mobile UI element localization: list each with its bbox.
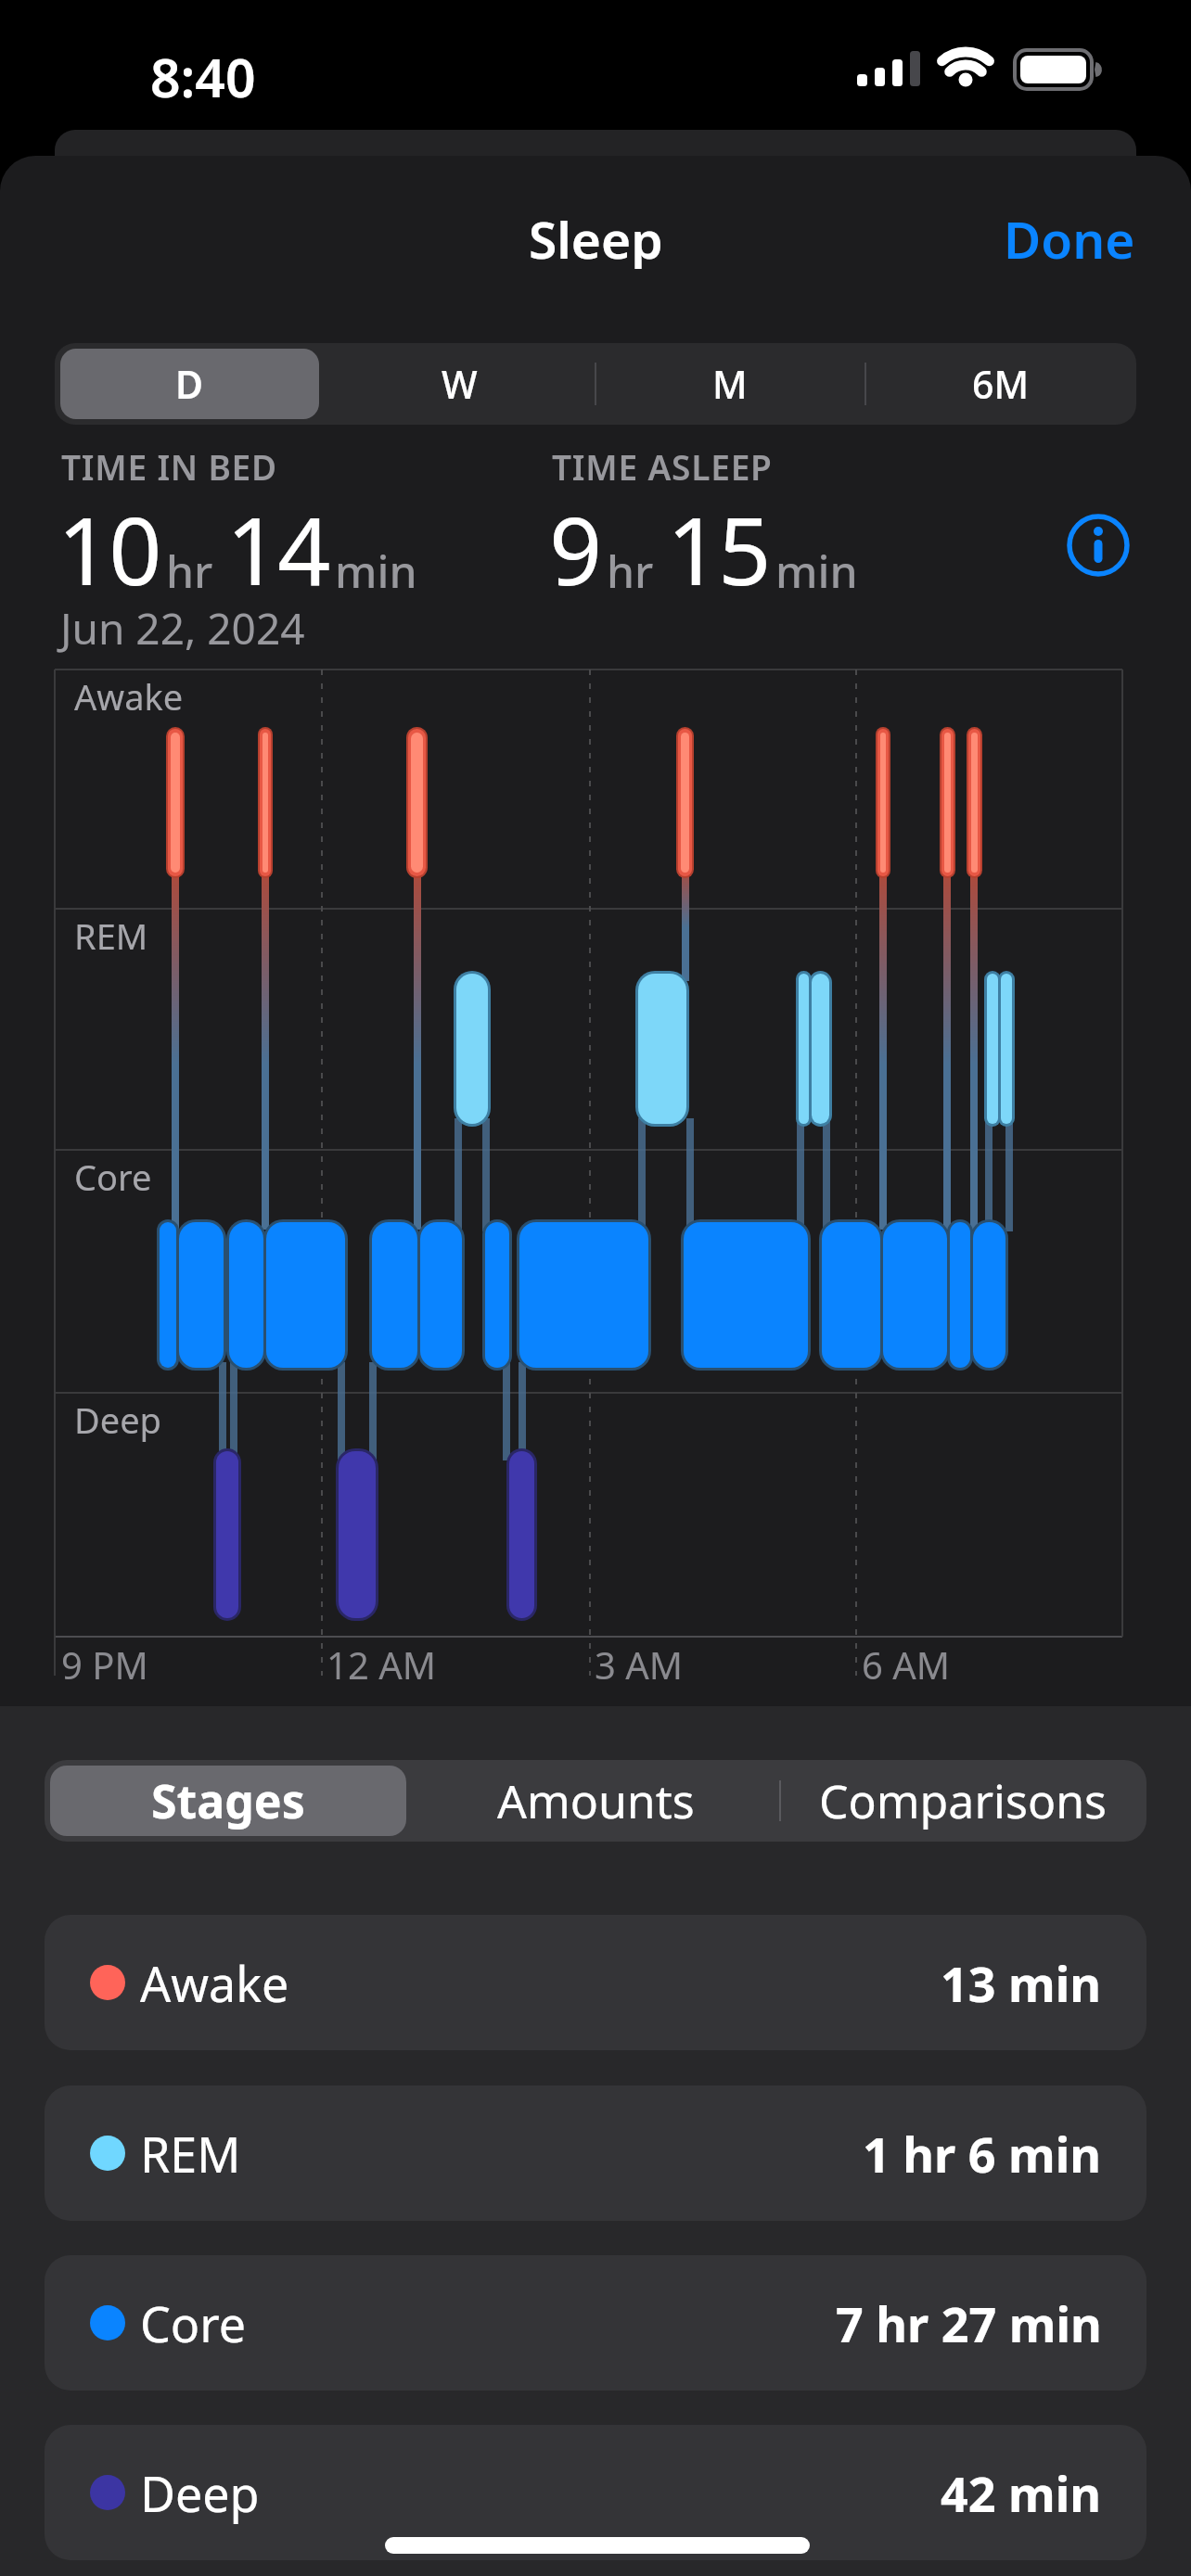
button[interactable]: Core bbox=[45, 2255, 1146, 2391]
button[interactable]: M bbox=[595, 343, 865, 425]
staticText: 7 hr 27 min bbox=[836, 2290, 1102, 2356]
staticText: Comparisons bbox=[819, 1769, 1107, 1832]
staticText: Done bbox=[1004, 204, 1135, 269]
staticText: Sleep bbox=[529, 204, 663, 269]
staticText: M bbox=[712, 358, 748, 410]
button[interactable]: Awake bbox=[45, 1915, 1146, 2050]
button[interactable]: Comparisons bbox=[779, 1760, 1146, 1842]
staticText: D bbox=[175, 358, 204, 410]
staticText: W bbox=[442, 358, 478, 410]
button[interactable]: Done bbox=[1004, 204, 1135, 269]
button[interactable]: REM bbox=[45, 2085, 1146, 2221]
staticText: Jun 22, 2024 bbox=[60, 599, 305, 657]
button[interactable] bbox=[1067, 514, 1130, 577]
staticText: 42 min bbox=[941, 2460, 1102, 2526]
staticText: Deep bbox=[74, 1396, 161, 1444]
staticText: Core bbox=[140, 2290, 247, 2356]
button[interactable]: Deep bbox=[45, 2425, 1146, 2560]
staticText: 10 bbox=[58, 486, 160, 612]
staticText: 6M bbox=[972, 358, 1030, 410]
button[interactable]: Amounts bbox=[412, 1760, 779, 1842]
staticText: Core bbox=[74, 1153, 152, 1201]
staticText: 3 AM bbox=[595, 1639, 684, 1690]
staticText: 9 PM bbox=[61, 1639, 148, 1690]
staticText: REM bbox=[140, 2121, 241, 2187]
staticText: 1 hr 6 min bbox=[863, 2121, 1102, 2187]
staticText: Deep bbox=[140, 2460, 260, 2526]
staticText: hr bbox=[607, 541, 654, 601]
staticText: TIME ASLEEP bbox=[552, 443, 773, 490]
staticText: min bbox=[775, 541, 858, 601]
staticText: Stages bbox=[151, 1769, 305, 1832]
button[interactable]: W bbox=[325, 343, 595, 425]
staticText: 8:40 bbox=[150, 41, 256, 113]
staticText: min bbox=[335, 541, 417, 601]
staticText: REM bbox=[74, 912, 148, 960]
staticText: Awake bbox=[74, 672, 184, 721]
button[interactable]: Stages bbox=[45, 1760, 412, 1842]
staticText: hr bbox=[166, 541, 213, 601]
staticText: 9 bbox=[549, 486, 601, 612]
staticText: TIME IN BED bbox=[61, 443, 277, 490]
staticText: 14 bbox=[226, 486, 329, 612]
button[interactable]: 6M bbox=[865, 343, 1136, 425]
staticText: 13 min bbox=[941, 1950, 1102, 2016]
staticText: Amounts bbox=[497, 1769, 695, 1832]
staticText: Awake bbox=[140, 1950, 289, 2016]
staticText: 12 AM bbox=[327, 1639, 436, 1690]
button[interactable]: D bbox=[55, 343, 325, 425]
staticText: 6 AM bbox=[862, 1639, 951, 1690]
staticText: 15 bbox=[667, 486, 770, 612]
